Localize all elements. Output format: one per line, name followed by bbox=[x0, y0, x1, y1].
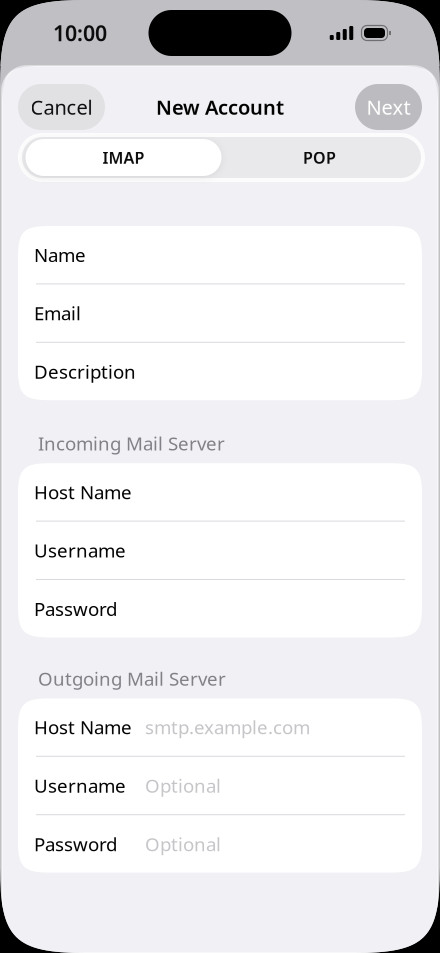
staticText: Next bbox=[366, 94, 410, 120]
staticText: Host Name bbox=[34, 715, 132, 739]
staticText: Optional bbox=[145, 773, 221, 798]
staticText: Description bbox=[34, 359, 136, 384]
staticText: Password bbox=[34, 831, 117, 856]
staticText: Password bbox=[34, 596, 117, 621]
staticText: Email bbox=[34, 301, 81, 325]
staticText: Incoming Mail Server bbox=[38, 431, 225, 456]
staticText: Optional bbox=[145, 831, 221, 856]
staticText: Username bbox=[34, 538, 126, 563]
button[interactable]: Cancel bbox=[18, 84, 105, 130]
staticText: smtp.example.com bbox=[145, 715, 310, 739]
staticText: Cancel bbox=[30, 94, 92, 120]
staticText: 10:00 bbox=[53, 19, 107, 47]
staticText: Outgoing Mail Server bbox=[38, 666, 226, 691]
staticText: Username bbox=[34, 773, 126, 798]
button[interactable]: IMAP bbox=[25, 139, 221, 176]
staticText: IMAP bbox=[102, 147, 144, 168]
button[interactable]: POP bbox=[221, 139, 417, 176]
staticText: POP bbox=[303, 147, 336, 168]
button[interactable]: Next bbox=[355, 84, 422, 130]
staticText: Name bbox=[34, 242, 86, 267]
staticText: New Account bbox=[156, 94, 284, 120]
staticText: Host Name bbox=[34, 479, 132, 504]
